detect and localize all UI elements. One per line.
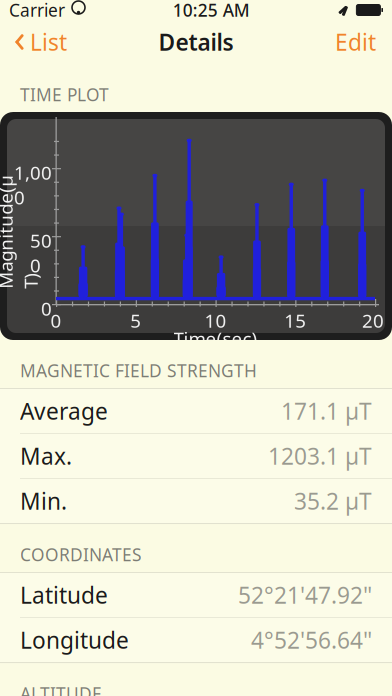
- staticText: 52°21'47.92": [238, 580, 372, 610]
- button[interactable]: List: [6, 21, 75, 63]
- button[interactable]: Edit: [325, 21, 386, 63]
- staticText: 5: [130, 308, 141, 333]
- staticText: 1203.1 µT: [268, 441, 372, 471]
- staticText: Edit: [335, 27, 376, 57]
- staticText: Longitude: [20, 625, 129, 655]
- staticText: 500: [30, 228, 52, 278]
- staticText: Latitude: [20, 580, 108, 610]
- button[interactable]: Longitude: [0, 618, 392, 662]
- staticText: Max.: [20, 441, 72, 471]
- staticText: 10: [204, 308, 226, 333]
- staticText: 1,000: [14, 160, 52, 210]
- staticText: Average: [20, 396, 108, 426]
- staticText: ALTITUDE: [20, 682, 102, 696]
- button[interactable]: Max.: [0, 434, 392, 478]
- staticText: COORDINATES: [20, 543, 142, 566]
- staticText: Details: [158, 27, 233, 57]
- button[interactable]: Average: [0, 389, 392, 433]
- staticText: List: [30, 27, 67, 57]
- staticText: Carrier: [9, 0, 65, 21]
- staticText: 4°52'56.64": [251, 625, 372, 655]
- staticText: Magnitude(µT): [0, 207, 75, 257]
- staticText: 35.2 µT: [294, 486, 372, 516]
- staticText: MAGNETIC FIELD STRENGTH: [20, 359, 257, 382]
- staticText: Time(sec): [173, 326, 257, 351]
- staticText: 0: [41, 296, 52, 321]
- staticText: 20: [362, 308, 384, 333]
- staticText: 171.1 µT: [281, 396, 372, 426]
- button[interactable]: Latitude: [0, 573, 392, 617]
- staticText: 10:25 AM: [173, 0, 250, 21]
- button[interactable]: Min.: [0, 479, 392, 523]
- staticText: 0: [50, 308, 61, 333]
- staticText: TIME PLOT: [20, 83, 109, 106]
- staticText: 15: [284, 308, 306, 333]
- staticText: Min.: [20, 486, 67, 516]
